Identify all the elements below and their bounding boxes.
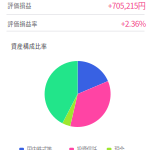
staticText: +2.36%	[121, 18, 146, 29]
staticText: 現金	[114, 145, 124, 150]
staticText: 投資信託	[77, 145, 97, 150]
staticText: 評価損益	[7, 1, 31, 9]
staticText: +705,215円	[108, 0, 146, 11]
staticText: 評価損益率	[7, 19, 37, 28]
staticText: 国内株式等	[27, 145, 52, 150]
button[interactable]: 評価損益	[0, 0, 150, 11]
button[interactable]: 評価損益率	[0, 18, 150, 29]
staticText: 資産構成比率	[11, 42, 47, 50]
